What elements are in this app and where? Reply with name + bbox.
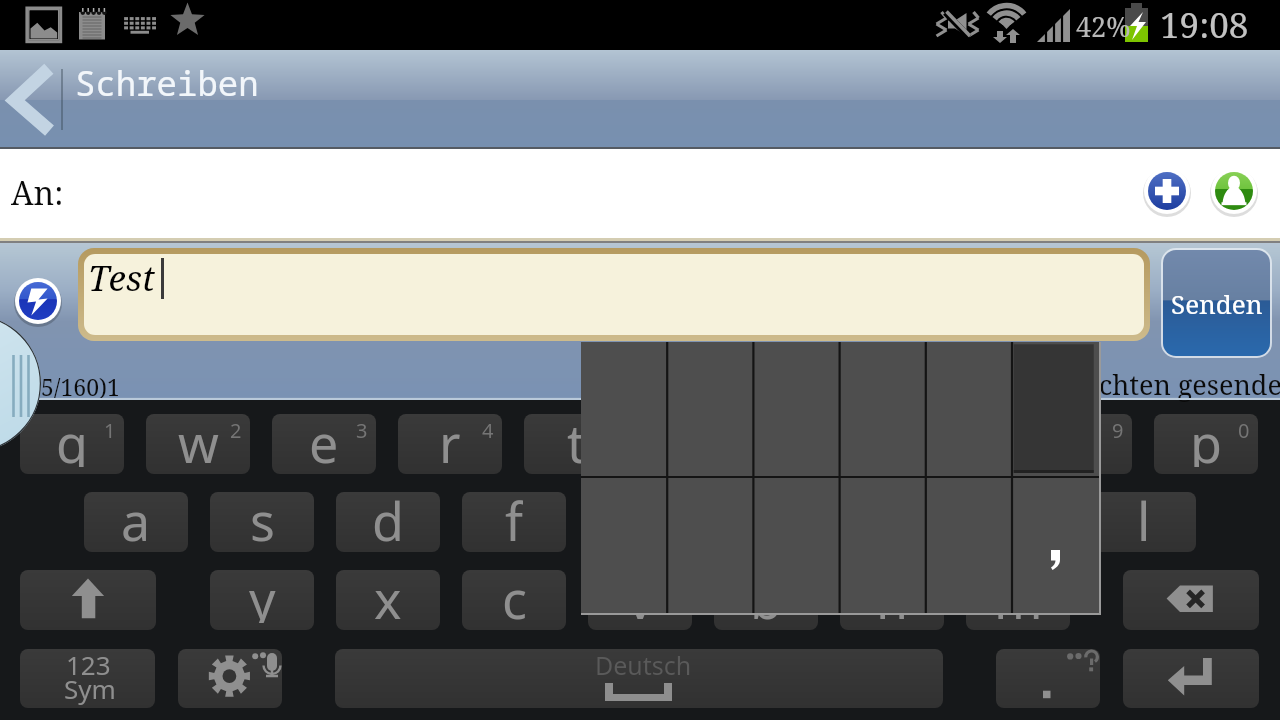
button[interactable]: Back — [0, 50, 62, 149]
staticText: An: — [11, 171, 64, 215]
button[interactable]: v — [588, 570, 692, 630]
staticText: e — [309, 414, 339, 467]
staticText: k — [1004, 492, 1032, 545]
staticText: 4 — [482, 417, 494, 444]
staticText: o — [1064, 414, 1096, 467]
button[interactable]: j — [840, 492, 944, 552]
staticText: l — [1137, 492, 1151, 545]
button[interactable]: Assistive menu — [0, 315, 41, 452]
staticText: m — [994, 570, 1043, 623]
button[interactable]: g — [588, 492, 692, 552]
staticText: p — [1190, 414, 1222, 467]
staticText: d — [372, 492, 404, 545]
button[interactable]: y — [210, 570, 314, 630]
button[interactable]: o — [1028, 414, 1132, 474]
button[interactable]: a — [84, 492, 188, 552]
staticText: 5/160)1 — [41, 371, 120, 402]
button[interactable]: Shift — [20, 570, 156, 630]
button[interactable]: Senden — [1163, 250, 1270, 356]
button[interactable]: i — [902, 414, 1006, 474]
button[interactable]: c — [462, 570, 566, 630]
button[interactable]: n — [840, 570, 944, 630]
staticText: Deutsch — [595, 649, 692, 682]
button[interactable]: t — [524, 414, 628, 474]
staticText: v — [627, 570, 654, 623]
button[interactable]: Contacts — [1210, 167, 1258, 215]
button[interactable]: s — [210, 492, 314, 552]
staticText: Schreiben — [75, 60, 259, 106]
button[interactable]: 123 — [20, 649, 155, 708]
button[interactable]: Backspace — [1123, 570, 1259, 630]
staticText: x — [374, 570, 402, 623]
staticText: chten gesendet — [1099, 366, 1280, 403]
button[interactable]: b — [714, 570, 818, 630]
button[interactable]: m — [966, 570, 1070, 630]
button[interactable]: Add recipient — [1143, 167, 1191, 215]
staticText: t — [567, 414, 586, 467]
button[interactable]: Symbol chooser — [581, 342, 1101, 615]
button[interactable]: Settings and voice input — [178, 649, 282, 708]
staticText: a — [121, 492, 151, 545]
button[interactable]: w — [146, 414, 250, 474]
button[interactable]: Period — [996, 649, 1100, 708]
staticText: Test — [88, 254, 155, 302]
staticText: 123 — [66, 649, 111, 682]
staticText: 3 — [356, 417, 368, 444]
button[interactable]: u — [776, 414, 880, 474]
staticText: r — [439, 414, 461, 467]
staticText: b — [750, 570, 782, 623]
button[interactable]: q — [20, 414, 124, 474]
staticText: u — [812, 414, 845, 467]
button[interactable]: f — [462, 492, 566, 552]
button[interactable]: h — [714, 492, 818, 552]
button[interactable]: Test — [84, 254, 1144, 335]
staticText: 42% — [1076, 8, 1131, 45]
staticText: c — [502, 570, 527, 623]
staticText: 1 — [104, 417, 116, 444]
staticText: 2 — [230, 417, 242, 444]
staticText: q — [56, 414, 88, 467]
staticText: f — [505, 492, 523, 545]
staticText: Sym — [64, 671, 116, 706]
staticText: s — [250, 492, 275, 545]
button[interactable]: p — [1154, 414, 1258, 474]
staticText: Senden — [1171, 286, 1263, 321]
button[interactable]: l — [1092, 492, 1196, 552]
button[interactable]: Space — [335, 649, 943, 708]
staticText: n — [876, 570, 909, 623]
button[interactable]: r — [398, 414, 502, 474]
button[interactable]: z — [650, 414, 754, 474]
button[interactable]: d — [336, 492, 440, 552]
staticText: h — [750, 492, 783, 545]
button[interactable]: Quick text — [14, 277, 62, 325]
staticText: y — [249, 570, 276, 623]
staticText: w — [178, 414, 219, 467]
staticText: 9 — [1112, 417, 1124, 444]
staticText: 19:08 — [1160, 1, 1249, 49]
button[interactable]: x — [336, 570, 440, 630]
button[interactable]: Enter — [1123, 649, 1259, 708]
button[interactable]: k — [966, 492, 1070, 552]
staticText: 0 — [1238, 417, 1250, 444]
button[interactable]: e — [272, 414, 376, 474]
